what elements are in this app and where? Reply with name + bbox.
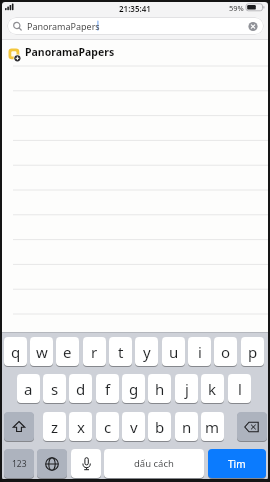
button[interactable]: r: [83, 337, 106, 366]
staticText: y: [143, 342, 151, 362]
button[interactable]: [37, 449, 67, 478]
button[interactable]: a: [17, 374, 40, 403]
staticText: 123: [12, 458, 27, 470]
button[interactable]: n: [175, 412, 198, 441]
button[interactable]: g: [122, 374, 145, 403]
staticText: o: [221, 342, 231, 362]
staticText: 59%: [229, 3, 244, 13]
staticText: x: [77, 417, 85, 437]
button[interactable]: d: [69, 374, 92, 403]
button[interactable]: t: [109, 337, 132, 366]
staticText: m: [205, 417, 220, 437]
button[interactable]: k: [201, 374, 224, 403]
button[interactable]: x: [69, 412, 92, 441]
staticText: i: [198, 342, 202, 362]
button[interactable]: m: [201, 412, 224, 441]
button[interactable]: PanoramaPapers: [2, 41, 268, 63]
staticText: w: [36, 342, 48, 362]
staticText: l: [238, 379, 242, 399]
staticText: n: [182, 417, 192, 437]
button[interactable]: s: [43, 374, 66, 403]
staticText: PanoramaPapers: [27, 20, 100, 32]
staticText: a: [24, 379, 33, 399]
staticText: h: [155, 379, 165, 399]
staticText: Tìm: [228, 457, 246, 471]
staticText: dấu cách: [134, 457, 174, 470]
staticText: s: [51, 379, 59, 399]
staticText: p: [248, 342, 258, 362]
button[interactable]: [4, 412, 34, 441]
button[interactable]: l: [228, 374, 251, 403]
button[interactable]: dấu cách: [104, 449, 204, 478]
staticText: r: [91, 342, 98, 362]
staticText: g: [129, 379, 139, 399]
button[interactable]: z: [43, 412, 66, 441]
button[interactable]: y: [135, 337, 158, 366]
staticText: q: [11, 342, 21, 362]
button[interactable]: b: [148, 412, 171, 441]
staticText: z: [51, 417, 59, 437]
staticText: 21:35:41: [119, 3, 151, 14]
button[interactable]: h: [148, 374, 171, 403]
button[interactable]: [237, 412, 267, 441]
staticText: k: [208, 379, 217, 399]
button[interactable]: v: [122, 412, 145, 441]
staticText: v: [130, 417, 138, 437]
button[interactable]: u: [162, 337, 185, 366]
button[interactable]: e: [56, 337, 79, 366]
button[interactable]: w: [30, 337, 53, 366]
button[interactable]: [7, 17, 264, 35]
button[interactable]: f: [96, 374, 119, 403]
button[interactable]: c: [96, 412, 119, 441]
staticText: u: [169, 342, 179, 362]
staticText: c: [104, 417, 112, 437]
button[interactable]: p: [241, 337, 264, 366]
staticText: e: [63, 342, 72, 362]
staticText: PanoramaPapers: [25, 45, 115, 59]
button[interactable]: 123: [4, 449, 34, 478]
button[interactable]: Tìm: [208, 449, 266, 478]
button[interactable]: o: [214, 337, 237, 366]
button[interactable]: q: [4, 337, 27, 366]
staticText: f: [105, 379, 111, 399]
button[interactable]: i: [188, 337, 211, 366]
staticText: t: [118, 342, 124, 362]
button[interactable]: j: [175, 374, 198, 403]
button[interactable]: [71, 449, 101, 478]
staticText: j: [185, 379, 189, 399]
staticText: d: [76, 379, 86, 399]
staticText: b: [155, 417, 165, 437]
